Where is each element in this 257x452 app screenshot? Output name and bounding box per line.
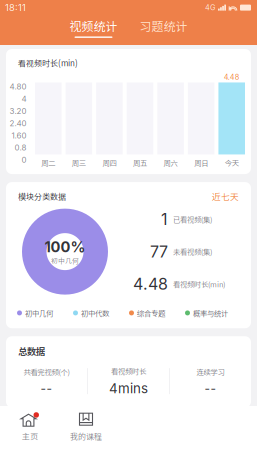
staticText: 100% xyxy=(44,238,85,256)
staticText: 习题统计 xyxy=(139,17,187,34)
staticText: 已看视频(集) xyxy=(173,214,212,225)
staticText: 77 xyxy=(150,242,168,261)
staticText: 概率与统计 xyxy=(193,308,228,318)
staticText: 视频统计 xyxy=(69,17,117,34)
staticText: 周五 xyxy=(133,157,147,168)
staticText: 我的课程 xyxy=(70,430,102,442)
staticText: 综合专题 xyxy=(137,308,165,318)
staticText: 4.48 xyxy=(224,73,240,81)
staticText: 0.8 xyxy=(14,143,26,152)
staticText: 0 xyxy=(21,155,26,165)
staticText: 2.40 xyxy=(9,118,26,128)
button[interactable]: 视频统计 xyxy=(69,17,117,38)
staticText: 4G xyxy=(205,3,215,12)
staticText: 周日 xyxy=(194,157,208,168)
staticText: 连续学习 xyxy=(196,367,224,377)
staticText: 模块分类数据 xyxy=(18,191,66,202)
staticText: 1 xyxy=(161,210,168,229)
staticText: 4.80 xyxy=(9,82,26,91)
staticText: 今天 xyxy=(225,157,239,168)
staticText: 共看完视频(个) xyxy=(24,367,70,377)
staticText: 初中几何 xyxy=(51,256,79,265)
staticText: 周二 xyxy=(41,157,55,168)
staticText: -- xyxy=(204,381,216,396)
staticText: 近七天 xyxy=(212,190,239,203)
staticText: 1.60 xyxy=(11,131,26,140)
staticText: 总数据 xyxy=(18,344,45,358)
button[interactable]: 主页 xyxy=(2,407,58,451)
staticText: 未看视频(集) xyxy=(173,246,212,257)
staticText: 周三 xyxy=(72,157,86,168)
staticText: 4.48 xyxy=(133,274,168,294)
staticText: 看视频时长 xyxy=(111,366,146,376)
staticText: 看视频时长(min) xyxy=(173,279,225,289)
staticText: 周六 xyxy=(164,157,178,168)
staticText: 4mins xyxy=(109,380,148,396)
staticText: 周四 xyxy=(102,157,116,168)
staticText: 看视频时长(min) xyxy=(18,57,78,69)
button[interactable]: 习题统计 xyxy=(139,17,187,38)
staticText: 初中代数 xyxy=(81,308,109,318)
staticText: 初中几何 xyxy=(25,308,53,318)
staticText: 主页 xyxy=(22,430,38,442)
button[interactable]: 我的课程 xyxy=(58,407,114,451)
staticText: 18:11 xyxy=(5,2,26,13)
staticText: -- xyxy=(41,381,53,396)
staticText: 4 xyxy=(21,94,26,104)
staticText: 3.20 xyxy=(9,106,26,116)
